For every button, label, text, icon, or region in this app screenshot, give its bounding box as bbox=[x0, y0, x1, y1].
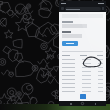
button[interactable]: Submit bbox=[62, 41, 78, 46]
button[interactable]: Row 2 bbox=[62, 62, 103, 65]
button[interactable]: Row 3 bbox=[62, 66, 103, 69]
button[interactable]: Address bar bbox=[59, 5, 106, 12]
button[interactable]: Confirm bbox=[80, 94, 86, 99]
button[interactable]: Row 4 bbox=[62, 70, 103, 73]
button[interactable]: Row 5 bbox=[62, 74, 103, 77]
button[interactable]: Back bbox=[94, 102, 97, 105]
button[interactable]: Row 7 bbox=[62, 82, 103, 85]
button[interactable]: Row 9 bbox=[62, 90, 103, 93]
button[interactable]: Row 1 bbox=[62, 58, 103, 61]
button[interactable]: Home bbox=[81, 102, 84, 105]
button[interactable]: Row 6 bbox=[62, 78, 103, 81]
button[interactable]: Row 8 bbox=[62, 86, 103, 89]
button[interactable]: Recents bbox=[69, 102, 72, 105]
